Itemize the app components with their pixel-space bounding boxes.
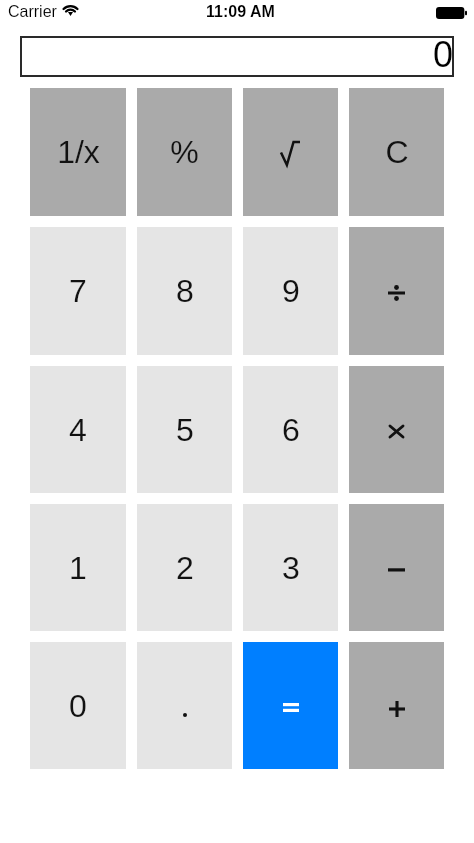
other: Divide <box>388 286 405 300</box>
button[interactable]: 7 <box>30 227 126 355</box>
button[interactable]: Square root <box>243 88 338 216</box>
other: Equals <box>283 703 299 713</box>
staticText: 8 <box>176 273 194 309</box>
other: Decimal point <box>182 712 188 718</box>
staticText: 6 <box>282 412 300 448</box>
button[interactable]: 1/x <box>30 88 126 216</box>
button[interactable]: 4 <box>30 366 126 493</box>
button[interactable]: Plus <box>349 642 444 769</box>
staticText: 1/x <box>57 134 100 170</box>
staticText: 4 <box>69 412 87 448</box>
button[interactable]: Equals <box>243 642 338 769</box>
other: Square root <box>281 142 300 165</box>
other: Battery full <box>436 7 467 19</box>
staticText: 0 <box>432 34 453 74</box>
staticText: 9 <box>282 273 300 309</box>
button[interactable]: 8 <box>137 227 232 355</box>
other: Plus <box>389 701 405 717</box>
other: Multiply <box>390 426 403 437</box>
staticText: C <box>385 134 409 170</box>
button[interactable]: Decimal point <box>137 642 232 769</box>
button[interactable]: 1 <box>30 504 126 631</box>
staticText: % <box>170 134 199 170</box>
staticText: 3 <box>282 550 300 586</box>
button[interactable]: 3 <box>243 504 338 631</box>
staticText: 1 <box>69 550 87 586</box>
staticText: 2 <box>176 550 194 586</box>
button[interactable]: 2 <box>137 504 232 631</box>
button[interactable]: Minus <box>349 504 444 631</box>
button[interactable]: C <box>349 88 444 216</box>
staticText: Carrier <box>8 3 57 21</box>
button[interactable]: 9 <box>243 227 338 355</box>
staticText: 7 <box>69 273 87 309</box>
button[interactable]: 6 <box>243 366 338 493</box>
staticText: 0 <box>69 688 87 724</box>
button[interactable]: 0 <box>30 642 126 769</box>
button[interactable]: % <box>137 88 232 216</box>
button[interactable]: 0 <box>20 36 454 77</box>
other: Wi-Fi <box>63 4 78 16</box>
staticText: 5 <box>176 412 194 448</box>
button[interactable]: Multiply <box>349 366 444 493</box>
staticText: 11:09 AM <box>206 3 275 21</box>
button[interactable]: 5 <box>137 366 232 493</box>
button[interactable]: Divide <box>349 227 444 355</box>
other: Minus <box>388 568 405 572</box>
